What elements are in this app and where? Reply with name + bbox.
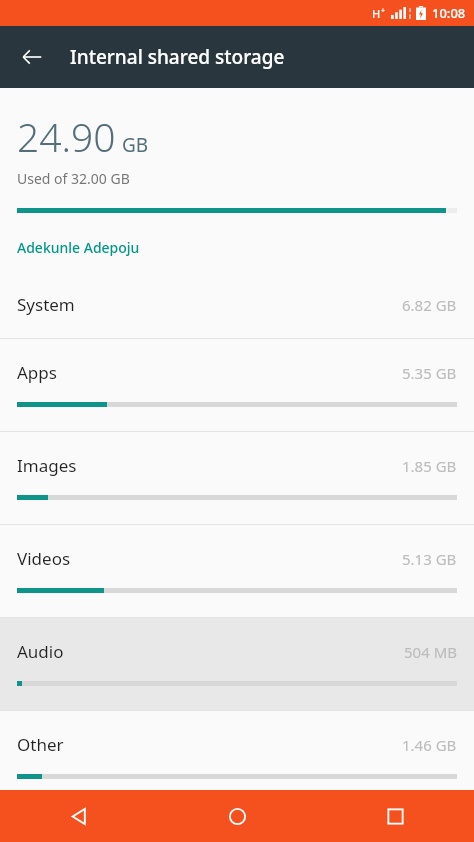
staticText: 6.82 GB [402, 295, 457, 315]
staticText: Videos [17, 547, 71, 570]
staticText: 24.90 [17, 110, 116, 163]
staticText: System [17, 293, 75, 316]
staticText: Used of 32.00 GB [17, 169, 130, 188]
staticText: Apps [17, 361, 57, 384]
button[interactable]: Back [0, 790, 158, 842]
staticText: + [381, 6, 386, 16]
button[interactable]: Images [0, 432, 474, 524]
staticText: 10:08 [432, 4, 466, 22]
staticText: Other [17, 733, 64, 756]
button[interactable]: Back [6, 31, 58, 83]
button[interactable]: Audio [0, 618, 474, 710]
staticText: 504 MB [404, 642, 457, 662]
button[interactable]: Home [158, 790, 316, 842]
staticText: 1.85 GB [402, 456, 457, 476]
staticText: H [372, 6, 381, 21]
button[interactable]: Other [0, 711, 474, 790]
staticText: 1.46 GB [402, 735, 457, 755]
staticText: Adekunle Adepoju [17, 238, 140, 257]
button[interactable]: System [0, 273, 474, 338]
button[interactable]: Apps [0, 339, 474, 431]
staticText: Audio [17, 640, 64, 663]
staticText: 5.35 GB [402, 363, 457, 383]
staticText: Internal shared storage [70, 44, 285, 70]
staticText: Images [17, 454, 77, 477]
button[interactable]: Recent apps [316, 790, 474, 842]
staticText: GB [122, 132, 149, 158]
button[interactable]: Videos [0, 525, 474, 617]
staticText: 5.13 GB [402, 549, 457, 569]
